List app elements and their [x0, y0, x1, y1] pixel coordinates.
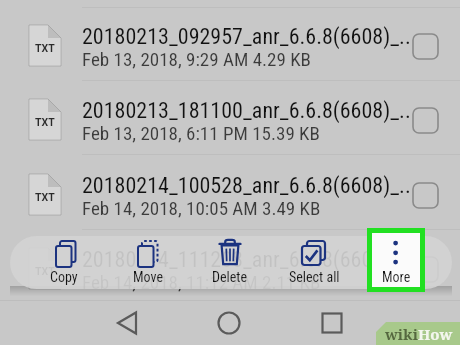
staticText: Feb 14, 2018, 10:05 AM 3.49 KB — [82, 197, 321, 219]
staticText: 20180213_181100_anr_6.6.8(6608)_... — [82, 98, 412, 124]
button[interactable]: TXT — [0, 230, 460, 304]
staticText: Feb 14, 2018, 11:12 AM 2.11 KB — [82, 271, 321, 293]
staticText: Feb 13, 2018, 6:11 PM 15.39 KB — [82, 122, 320, 144]
button[interactable]: Select file — [413, 257, 438, 282]
button[interactable]: TXT — [0, 7, 460, 81]
staticText: Move — [133, 269, 163, 285]
button[interactable]: Back — [108, 303, 148, 343]
button[interactable]: Recent apps — [312, 303, 352, 343]
button[interactable]: More — [372, 233, 420, 287]
staticText: 20180214_100528_anr_6.6.8(6608)_... — [82, 173, 412, 199]
button[interactable]: Select file — [413, 34, 438, 59]
staticText: How — [418, 324, 453, 344]
button[interactable]: Move — [108, 236, 188, 289]
staticText: Copy — [50, 269, 78, 285]
button[interactable]: Copy — [24, 236, 104, 289]
staticText: TXT — [35, 265, 55, 277]
staticText: Feb 13, 2018, 9:29 AM 4.29 KB — [82, 48, 311, 70]
button[interactable]: TXT — [0, 81, 460, 155]
staticText: TXT — [35, 42, 55, 54]
button[interactable]: More — [353, 236, 433, 289]
staticText: wiki — [385, 324, 418, 344]
staticText: More — [379, 269, 408, 285]
staticText: Delete — [212, 269, 248, 285]
button[interactable]: Delete — [190, 236, 270, 289]
staticText: Select all — [289, 269, 340, 285]
staticText: 20180213_092957_anr_6.6.8(6608)_... — [82, 24, 412, 50]
button[interactable]: Home — [209, 303, 249, 343]
staticText: TXT — [35, 116, 55, 128]
staticText: 20180214_111208_anr_6.6.8(6608)_... — [82, 247, 412, 273]
staticText: More — [382, 269, 411, 285]
staticText: TXT — [35, 191, 55, 203]
button[interactable]: TXT — [0, 156, 460, 230]
button[interactable]: Select all — [274, 236, 354, 289]
button[interactable]: Select file — [413, 183, 438, 208]
button[interactable]: Select file — [413, 108, 438, 133]
